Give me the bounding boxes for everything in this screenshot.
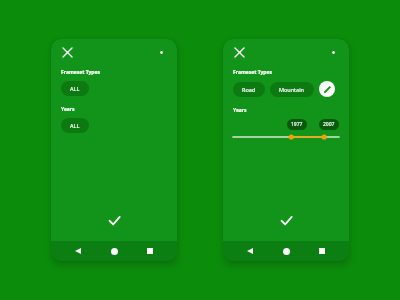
- staticText: 1977: [291, 121, 303, 128]
- staticText: Frameset Types: [233, 69, 272, 76]
- button[interactable]: Road: [233, 82, 265, 97]
- button[interactable]: Recents: [313, 242, 331, 260]
- button[interactable]: Apply: [275, 209, 297, 231]
- button[interactable]: Back: [241, 242, 259, 260]
- staticText: Frameset Types: [61, 69, 100, 76]
- button[interactable]: Home: [105, 242, 123, 260]
- staticText: Mountain: [279, 86, 305, 93]
- staticText: Road: [242, 86, 256, 93]
- staticText: ALL: [70, 122, 80, 129]
- button[interactable]: ALL: [61, 81, 89, 96]
- button[interactable]: Close: [59, 44, 75, 60]
- staticText: Years: [233, 107, 247, 114]
- button[interactable]: Apply: [103, 209, 125, 231]
- button[interactable]: Close: [231, 44, 247, 60]
- button[interactable]: More options: [153, 44, 169, 60]
- button[interactable]: Mountain: [270, 82, 314, 97]
- staticText: 2007: [323, 121, 335, 128]
- button[interactable]: More options: [325, 44, 341, 60]
- button[interactable]: Back: [69, 242, 87, 260]
- staticText: ALL: [70, 85, 80, 92]
- button[interactable]: ALL: [61, 118, 89, 133]
- button[interactable]: Recents: [141, 242, 159, 260]
- button[interactable]: Edit: [319, 81, 335, 97]
- button[interactable]: Home: [277, 242, 295, 260]
- staticText: Years: [61, 106, 75, 113]
